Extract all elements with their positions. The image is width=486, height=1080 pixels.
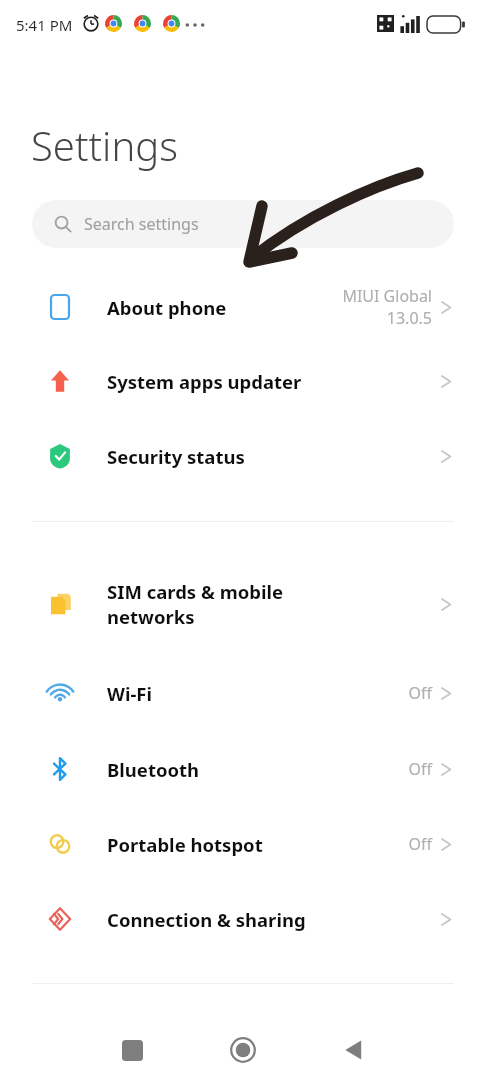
staticText: Connection & sharing <box>107 907 367 932</box>
staticText: Bluetooth <box>107 757 367 782</box>
staticText: Search settings <box>84 213 199 235</box>
staticText: MIUI Global 13.0.5 <box>262 285 432 329</box>
staticText: SIM cards & mobile networks <box>107 579 367 629</box>
button[interactable]: System apps updater <box>0 344 486 418</box>
button[interactable]: Connection & sharing <box>0 882 486 956</box>
button[interactable]: Wi-Fi <box>0 656 486 730</box>
staticText: Off <box>262 682 432 704</box>
button[interactable]: About phone <box>0 263 486 351</box>
staticText: Security status <box>107 444 367 469</box>
button[interactable]: SIM cards & mobile networks <box>0 560 486 648</box>
button[interactable]: Search settings <box>32 200 454 248</box>
staticText: System apps updater <box>107 369 367 394</box>
button[interactable]: Home <box>217 1024 269 1076</box>
button[interactable]: Security status <box>0 419 486 493</box>
button[interactable]: Portable hotspot <box>0 807 486 881</box>
button[interactable]: Bluetooth <box>0 732 486 806</box>
staticText: Portable hotspot <box>107 832 367 857</box>
staticText: 5:41 PM <box>16 15 73 35</box>
staticText: About phone <box>107 295 367 320</box>
staticText: Wi-Fi <box>107 681 367 706</box>
staticText: Settings <box>31 118 178 172</box>
button[interactable]: Back <box>327 1024 379 1076</box>
staticText: Off <box>262 833 432 855</box>
button[interactable]: Recent apps <box>106 1024 158 1076</box>
staticText: Off <box>262 758 432 780</box>
